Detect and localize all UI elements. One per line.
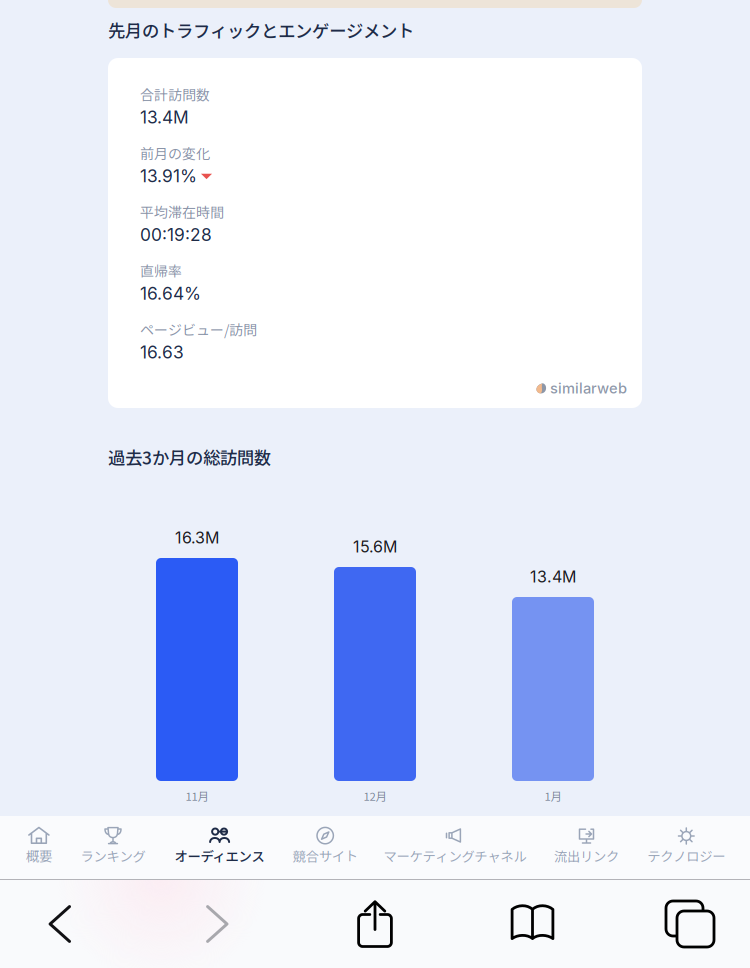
- staticText: 11月: [185, 788, 208, 804]
- button[interactable]: オーディエンス: [148, 816, 291, 879]
- staticText: 競合サイト: [293, 846, 358, 865]
- staticText: 16.63: [140, 342, 184, 363]
- staticText: 15.6M: [353, 537, 397, 556]
- button[interactable]: Forward: [120, 880, 315, 968]
- button[interactable]: マーケティングチャネル: [359, 816, 550, 879]
- staticText: similarweb: [550, 379, 627, 397]
- staticText: 00:19:28: [140, 224, 212, 245]
- staticText: 直帰率: [140, 260, 182, 280]
- staticText: 概要: [26, 846, 52, 865]
- staticText: ランキング: [80, 846, 145, 865]
- staticText: 1月: [544, 788, 561, 804]
- button[interactable]: ランキング: [78, 816, 148, 879]
- button[interactable]: Tabs: [630, 880, 750, 968]
- staticText: 16.64%: [140, 283, 201, 304]
- staticText: 平均滞在時間: [140, 201, 224, 222]
- staticText: マーケティングチャネル: [383, 846, 526, 865]
- staticText: オーディエンス: [175, 846, 265, 865]
- staticText: 先月のトラフィックとエンゲージメント: [108, 17, 414, 43]
- staticText: 13.4M: [140, 107, 189, 128]
- button[interactable]: テクノロジー: [623, 816, 750, 879]
- button[interactable]: Bookmarks: [435, 880, 630, 968]
- staticText: テクノロジー: [647, 846, 725, 865]
- button[interactable]: 概要: [0, 816, 78, 879]
- staticText: 12月: [363, 788, 386, 804]
- staticText: 流出リンク: [554, 846, 619, 865]
- staticText: 16.3M: [175, 528, 219, 547]
- staticText: 合計訪問数: [140, 84, 210, 104]
- staticText: 前月の変化: [140, 143, 210, 163]
- button[interactable]: 流出リンク: [550, 816, 623, 879]
- staticText: ページビュー/訪問: [140, 319, 257, 339]
- button[interactable]: 競合サイト: [291, 816, 359, 879]
- staticText: 13.91%: [140, 165, 197, 186]
- staticText: 13.4M: [530, 567, 576, 586]
- staticText: 過去3か月の総訪問数: [108, 444, 271, 470]
- button[interactable]: Share: [315, 880, 435, 968]
- button[interactable]: Back: [0, 880, 120, 968]
